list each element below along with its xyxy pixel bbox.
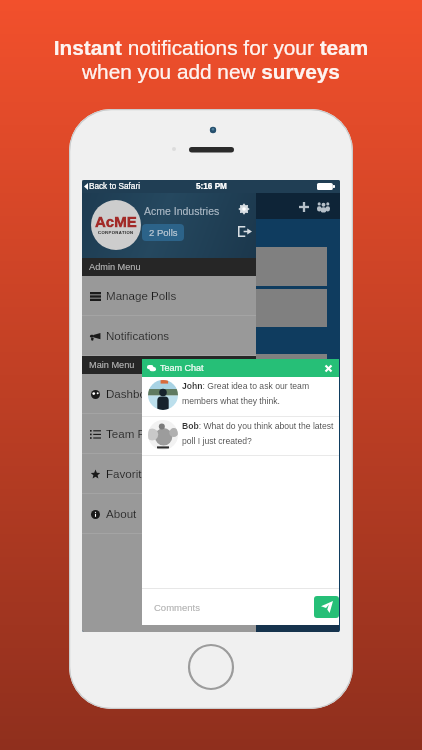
staticText: Team Chat: [160, 363, 204, 373]
staticText: Acme Industries: [144, 205, 220, 217]
staticText: Dashboard: [106, 387, 163, 400]
button[interactable]: Manage Polls: [82, 276, 256, 315]
staticText: 2 Polls: [149, 227, 178, 238]
staticText: Notifications: [106, 329, 170, 342]
staticText: Bob: What do you think about the latest …: [182, 421, 339, 446]
staticText: Instant notifications for your team when…: [0, 36, 422, 83]
staticText: AcME: [95, 213, 137, 230]
button[interactable]: Add poll: [295, 198, 312, 215]
button[interactable]: Favorites: [82, 454, 256, 493]
button[interactable]: Team members: [314, 197, 332, 215]
button[interactable]: Close chat: [320, 360, 336, 376]
staticText: Favorites: [106, 467, 154, 480]
staticText: John: Great idea to ask our team members…: [182, 381, 339, 406]
staticText: Main Menu: [89, 360, 135, 370]
button[interactable]: Dashboard: [82, 374, 256, 413]
button[interactable]: Team Chat: [142, 359, 339, 377]
button[interactable]: Sign out: [236, 222, 254, 240]
button[interactable]: About: [82, 494, 256, 533]
staticText: Back to Safari: [89, 182, 140, 191]
button[interactable]: Notifications: [82, 316, 256, 355]
button[interactable]: 2 Polls: [142, 224, 184, 241]
staticText: Admin Menu: [89, 262, 141, 272]
button[interactable]: Team Polls: [82, 414, 256, 453]
staticText: CORPORATION: [98, 230, 134, 235]
staticText: 5:16 PM: [196, 182, 227, 191]
staticText: Comments: [154, 602, 200, 613]
staticText: Manage Polls: [106, 289, 177, 302]
button[interactable]: Settings: [235, 200, 253, 218]
button[interactable]: Send: [314, 596, 339, 618]
staticText: About: [106, 507, 137, 520]
staticText: Team Polls: [106, 427, 163, 440]
